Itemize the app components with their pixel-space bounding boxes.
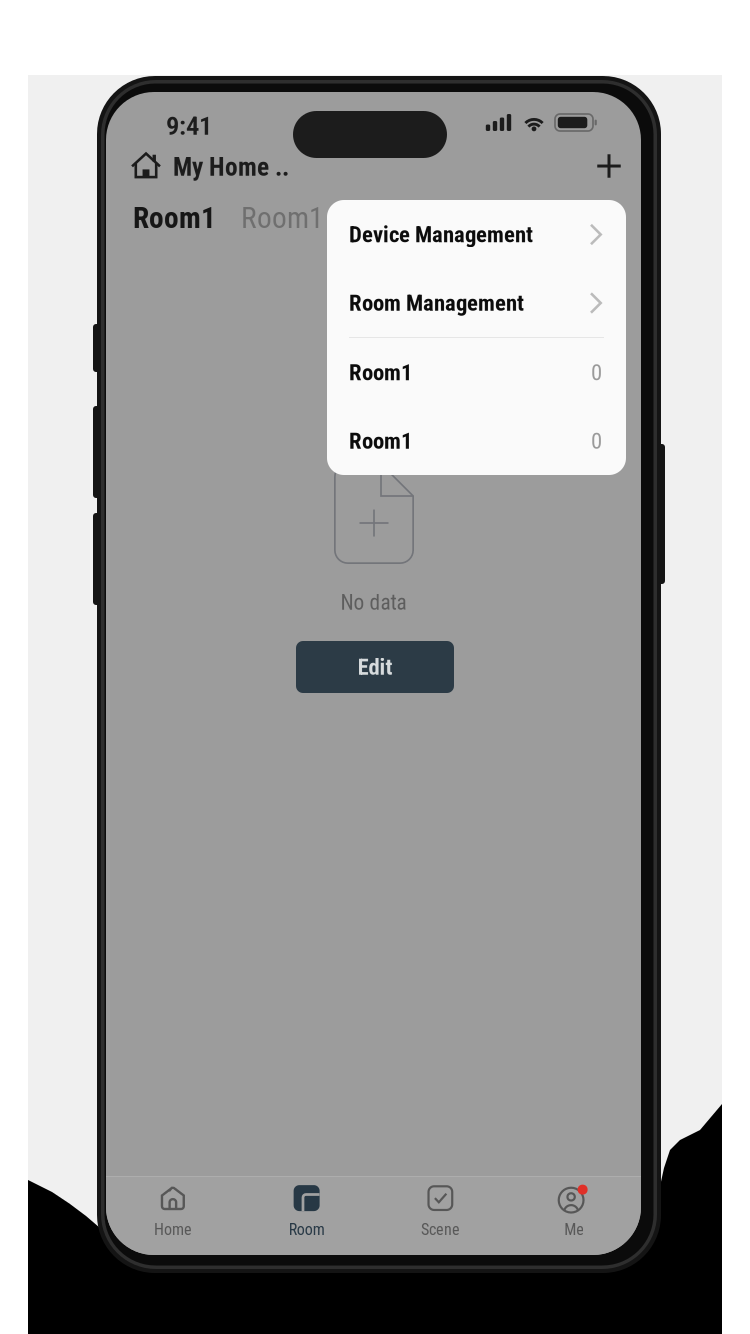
staticText: My Home .. bbox=[173, 152, 289, 182]
staticText: Room1 bbox=[349, 428, 412, 454]
button[interactable]: Home bbox=[106, 1179, 240, 1243]
button[interactable]: My Home .. bbox=[129, 145, 291, 189]
staticText: Room1 bbox=[241, 201, 323, 235]
button[interactable]: Room Management bbox=[327, 269, 626, 337]
staticText: 0 bbox=[591, 359, 602, 386]
staticText: Scene bbox=[421, 1220, 460, 1239]
staticText: Edit bbox=[357, 654, 392, 680]
staticText: 0 bbox=[591, 428, 602, 454]
button[interactable]: Room1 bbox=[348, 201, 430, 235]
staticText: No data bbox=[340, 590, 406, 615]
staticText: 9:41 bbox=[166, 110, 212, 141]
staticText: Room bbox=[289, 1220, 325, 1239]
staticText: Device Management bbox=[349, 221, 533, 248]
button[interactable]: Add bbox=[586, 143, 632, 189]
button[interactable]: Room1 bbox=[133, 201, 216, 235]
button[interactable]: Room bbox=[240, 1179, 374, 1243]
button[interactable]: Room1 bbox=[327, 338, 626, 407]
staticText: Room1 bbox=[349, 359, 412, 386]
staticText: Me bbox=[564, 1220, 584, 1239]
button[interactable]: Edit bbox=[296, 641, 454, 693]
staticText: Room Management bbox=[349, 290, 524, 316]
staticText: Room1 bbox=[133, 201, 216, 235]
button[interactable]: Device Management bbox=[327, 200, 626, 269]
button[interactable]: Me bbox=[507, 1179, 641, 1243]
button[interactable]: Room1 bbox=[241, 201, 323, 235]
staticText: Home bbox=[154, 1220, 192, 1239]
button[interactable]: Scene bbox=[373, 1179, 507, 1243]
button[interactable]: Room1 bbox=[327, 407, 626, 475]
staticText: Room1 bbox=[348, 201, 430, 235]
